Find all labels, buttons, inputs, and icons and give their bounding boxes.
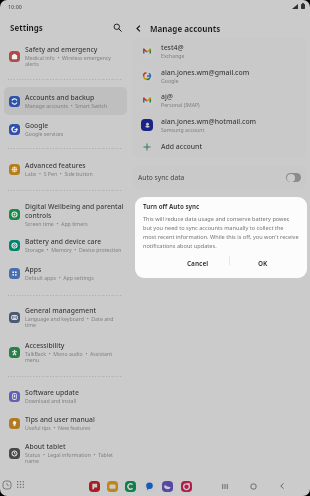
staticText: Digital Wellbeing and parental controls bbox=[25, 202, 124, 220]
button[interactable]: OK bbox=[234, 255, 291, 272]
staticText: Turn off Auto sync bbox=[143, 202, 200, 210]
staticText: alan.jones.wm@gmail.com bbox=[161, 68, 250, 77]
button[interactable]: Battery and device care bbox=[4, 231, 127, 259]
button[interactable]: Cancel bbox=[170, 255, 226, 272]
staticText: General management bbox=[25, 306, 97, 315]
button[interactable]: test4@ bbox=[130, 39, 305, 62]
staticText: Google bbox=[161, 77, 179, 84]
staticText: Samsung account bbox=[161, 126, 205, 133]
button[interactable]: files bbox=[107, 481, 118, 492]
staticText: Settings bbox=[10, 22, 43, 33]
button[interactable]: Advanced features bbox=[4, 155, 127, 183]
staticText: Download and install bbox=[25, 397, 77, 404]
staticText: Auto sync data bbox=[138, 173, 286, 182]
staticText: About tablet bbox=[25, 442, 66, 451]
button[interactable]: About tablet bbox=[4, 436, 127, 471]
staticText: Manage accounts • Smart Switch bbox=[25, 102, 108, 109]
button[interactable]: General management bbox=[4, 300, 127, 335]
button[interactable]: messages bbox=[144, 481, 155, 492]
staticText: Useful tips • New features bbox=[25, 424, 91, 431]
staticText: TalkBack • Mono audio • Assistant menu bbox=[25, 350, 113, 364]
staticText: aj@ bbox=[161, 92, 173, 101]
button[interactable]: Back bbox=[276, 480, 288, 492]
staticText: Google bbox=[25, 121, 49, 130]
button[interactable]: alan.jones.wm@gmail.com bbox=[130, 64, 305, 87]
button[interactable]: Recent apps bbox=[1, 479, 12, 490]
staticText: Add account bbox=[161, 142, 203, 151]
button[interactable]: Recents bbox=[219, 480, 231, 492]
button[interactable]: Digital Wellbeing and parental controls bbox=[4, 196, 127, 233]
staticText: Screen time • App timers bbox=[25, 220, 88, 227]
staticText: Default apps • App settings bbox=[25, 274, 94, 281]
staticText: Medical info • Wireless emergency alerts bbox=[25, 54, 112, 68]
button[interactable]: Home bbox=[247, 480, 259, 492]
staticText: alan.jones.wm@hotmail.com bbox=[161, 117, 257, 126]
button[interactable]: phone bbox=[125, 481, 136, 492]
staticText: Exchange bbox=[161, 52, 185, 59]
staticText: This will reduce data usage and conserve… bbox=[143, 215, 299, 250]
staticText: Accounts and backup bbox=[25, 93, 95, 102]
button[interactable]: Google bbox=[4, 115, 127, 143]
staticText: Storage • Memory • Device protection bbox=[25, 246, 122, 253]
staticText: Google services bbox=[25, 130, 64, 137]
button[interactable]: alan.jones.wm@hotmail.com bbox=[130, 113, 305, 136]
staticText: Safety and emergency bbox=[25, 45, 98, 54]
button[interactable]: internet bbox=[89, 481, 100, 492]
staticText: Battery and device care bbox=[25, 237, 102, 246]
button[interactable]: Add account bbox=[130, 138, 305, 154]
button[interactable]: aj@ bbox=[130, 88, 305, 111]
staticText: test4@ bbox=[161, 43, 184, 52]
staticText: Labs • S Pen • Side button bbox=[25, 170, 93, 177]
staticText: Software update bbox=[25, 388, 79, 397]
staticText: Tips and user manual bbox=[25, 415, 95, 424]
button[interactable]: Auto sync data bbox=[132, 165, 307, 190]
staticText: OK bbox=[258, 259, 268, 268]
staticText: Manage accounts bbox=[150, 23, 221, 34]
staticText: Status • Legal information • Tablet name bbox=[25, 451, 113, 465]
staticText: Apps bbox=[25, 265, 42, 274]
button[interactable]: Accessibility bbox=[4, 335, 127, 370]
button[interactable]: Apps bbox=[4, 259, 127, 287]
button[interactable]: Apps bbox=[15, 479, 26, 490]
staticText: Cancel bbox=[187, 259, 209, 268]
button[interactable]: Tips and user manual bbox=[4, 409, 127, 437]
button[interactable]: Back bbox=[130, 20, 146, 36]
button[interactable]: Software update bbox=[4, 382, 127, 410]
staticText: Language and keyboard • Date and time bbox=[25, 315, 114, 329]
button[interactable]: Search bbox=[110, 20, 124, 34]
staticText: Advanced features bbox=[25, 161, 86, 170]
staticText: Accessibility bbox=[25, 341, 65, 350]
button[interactable]: camera bbox=[181, 481, 192, 492]
button[interactable]: Safety and emergency bbox=[4, 39, 127, 74]
button[interactable]: browser bbox=[162, 481, 173, 492]
button[interactable]: Accounts and backup bbox=[4, 87, 127, 115]
staticText: Personal (IMAP) bbox=[161, 101, 200, 108]
staticText: 10:00 bbox=[8, 3, 22, 10]
